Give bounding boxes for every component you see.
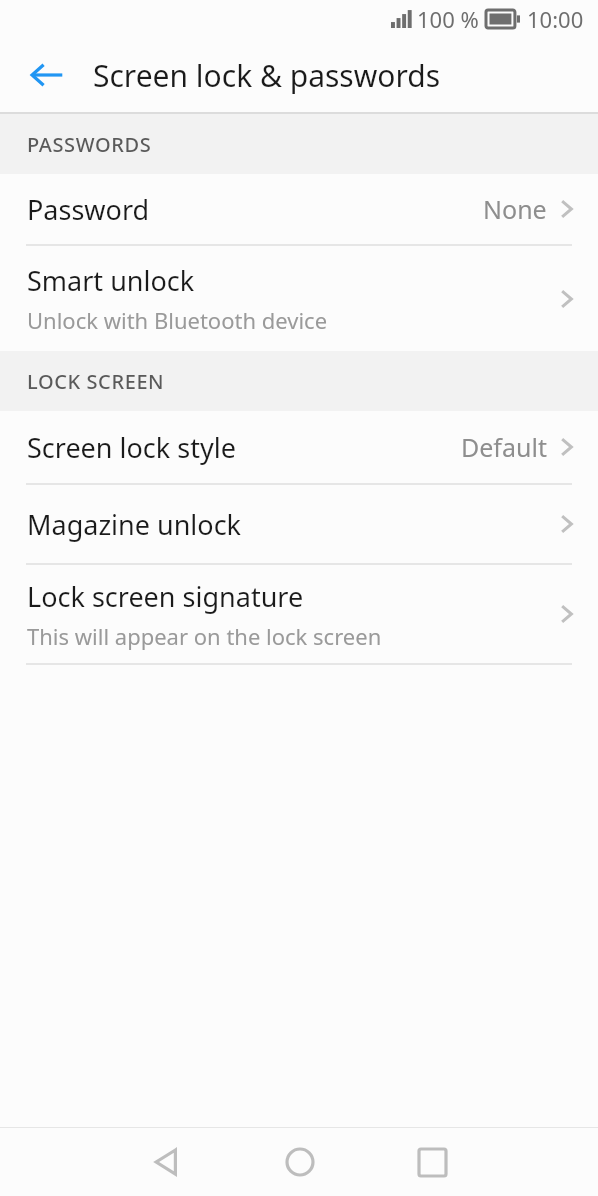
staticText: This will appear on the lock screen [27,621,382,651]
button[interactable]: Back [100,1128,233,1196]
staticText: LOCK SCREEN [27,368,165,395]
staticText: None [483,192,547,226]
button[interactable]: Smart unlock [0,246,598,351]
staticText: Default [461,430,547,464]
button[interactable]: Magazine unlock [0,485,598,563]
staticText: Screen lock & passwords [93,55,441,96]
button[interactable]: Recent apps [366,1128,499,1196]
staticText: Magazine unlock [27,506,242,543]
staticText: 10:00 [527,4,584,34]
staticText: Password [27,191,150,228]
staticText: Unlock with Bluetooth device [27,305,328,335]
staticText: Smart unlock [27,262,195,299]
staticText: PASSWORDS [27,131,152,158]
staticText: Screen lock style [27,429,236,466]
button[interactable]: Password [0,174,598,244]
staticText: 100 % [417,4,479,34]
button[interactable]: Screen lock style [0,411,598,483]
button[interactable]: Home [233,1128,366,1196]
button[interactable]: Lock screen signature [0,565,598,663]
staticText: Lock screen signature [27,578,304,615]
button[interactable]: Back [18,46,76,104]
